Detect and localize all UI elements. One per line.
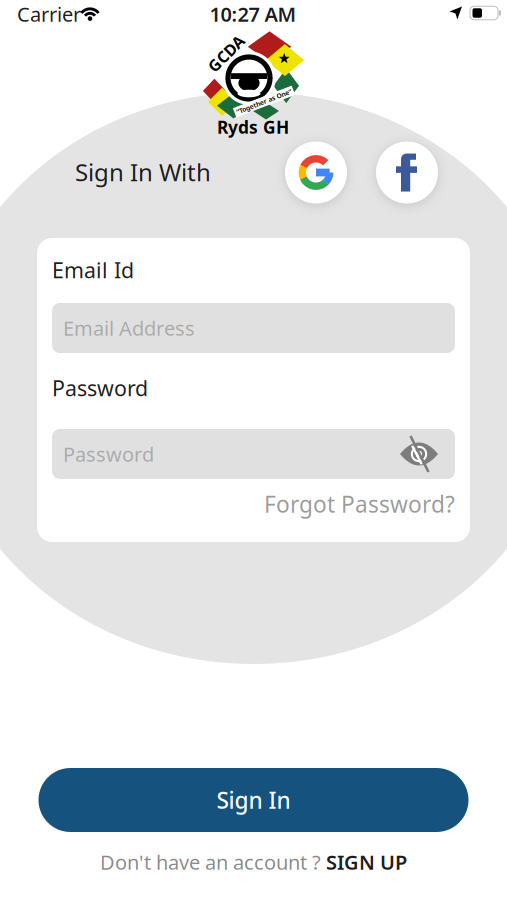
staticText: Password xyxy=(52,374,148,402)
button[interactable]: Sign in with Facebook xyxy=(376,141,438,203)
button[interactable]: Forgot Password? xyxy=(264,489,455,519)
staticText: “Together as One” xyxy=(234,97,293,106)
staticText: Email Id xyxy=(52,256,134,284)
staticText: 10:27 AM xyxy=(209,1,296,27)
staticText: Sign In xyxy=(216,785,290,815)
staticText: GCDA xyxy=(204,43,248,64)
staticText: Password xyxy=(63,441,154,467)
button[interactable]: Sign in with Google xyxy=(285,141,347,203)
staticText: Ryds GH xyxy=(217,115,289,138)
staticText: Don't have an account ? xyxy=(100,849,326,875)
button[interactable]: SIGN UP xyxy=(326,849,407,875)
staticText: Email Address xyxy=(63,315,195,341)
staticText: SIGN UP xyxy=(326,849,407,875)
button[interactable]: Sign In xyxy=(38,768,468,832)
staticText: Carrier xyxy=(17,1,81,27)
button[interactable]: Show password xyxy=(399,436,439,472)
staticText: Sign In With xyxy=(75,156,211,188)
staticText: Forgot Password? xyxy=(264,489,455,519)
